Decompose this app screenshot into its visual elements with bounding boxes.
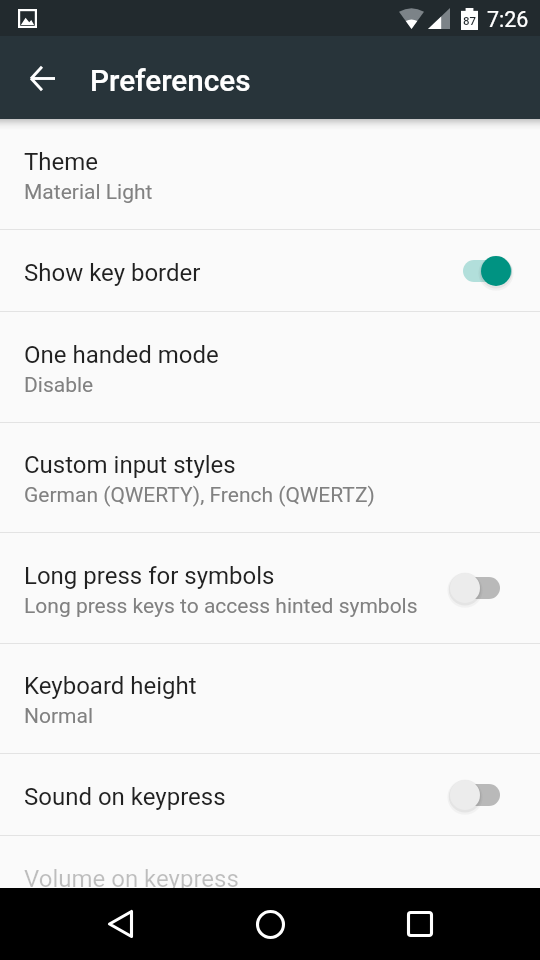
button[interactable]: Show key border (0, 230, 540, 311)
button[interactable]: Home (222, 888, 318, 960)
button[interactable]: Volume on keypress (0, 836, 540, 888)
staticText: 7:26 (487, 7, 529, 32)
button[interactable]: Recent apps (372, 888, 468, 960)
button[interactable]: Theme (0, 119, 540, 229)
staticText: Sound on keypress (24, 783, 226, 811)
staticText: 87 (463, 14, 477, 27)
staticText: Long press keys to access hinted symbols (24, 594, 418, 619)
button[interactable]: Custom input styles (0, 423, 540, 532)
button[interactable]: Back (72, 888, 168, 960)
staticText: Material Light (24, 180, 153, 205)
button[interactable]: Switch on (440, 245, 540, 297)
button[interactable]: Navigate up (18, 54, 66, 102)
staticText: Preferences (90, 63, 251, 98)
button[interactable]: One handed mode (0, 312, 540, 422)
staticText: Disable (24, 373, 94, 398)
button[interactable]: Keyboard height (0, 644, 540, 753)
staticText: Normal (24, 704, 94, 729)
button[interactable]: Switch off (440, 769, 540, 821)
staticText: Show key border (24, 259, 201, 287)
staticText: Volume on keypress (24, 865, 239, 888)
staticText: Custom input styles (24, 451, 236, 479)
staticText: One handed mode (24, 341, 219, 369)
staticText: German (QWERTY), French (QWERTZ) (24, 483, 375, 508)
button[interactable]: Sound on keypress (0, 754, 540, 835)
button[interactable]: Long press for symbols (0, 533, 540, 643)
staticText: Keyboard height (24, 672, 197, 700)
button[interactable]: Switch off (440, 562, 540, 614)
staticText: Theme (24, 148, 99, 176)
staticText: Long press for symbols (24, 562, 275, 590)
